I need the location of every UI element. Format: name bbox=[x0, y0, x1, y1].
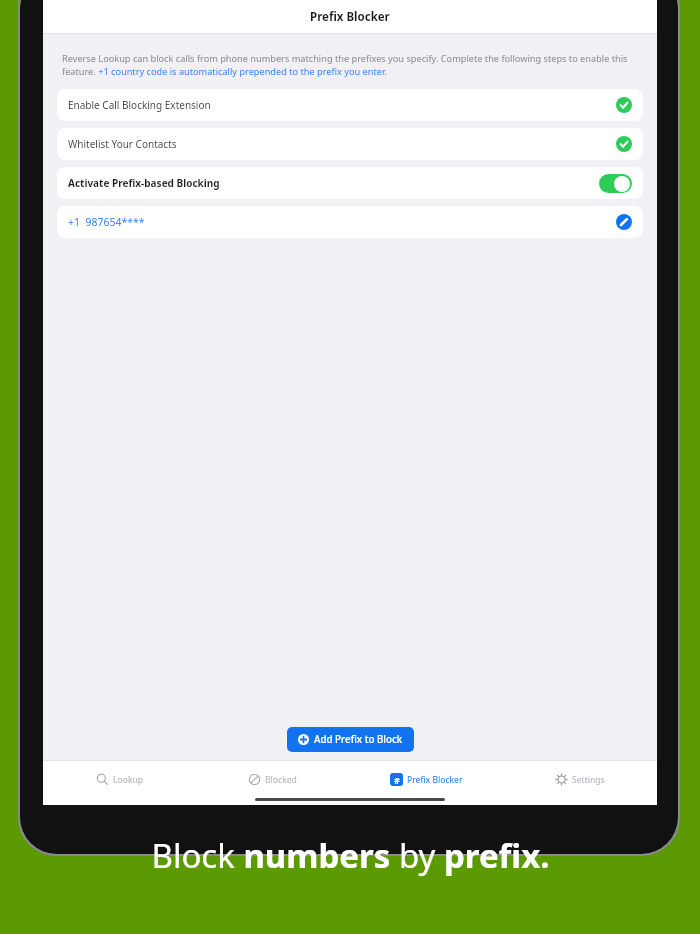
staticText: Whitelist Your Contacts bbox=[68, 137, 616, 151]
staticText: Prefix Blocker bbox=[310, 9, 390, 25]
staticText: # bbox=[394, 774, 400, 786]
staticText: Reverse Lookup can block calls from phon… bbox=[62, 52, 638, 78]
staticText: Enable Call Blocking Extension bbox=[68, 98, 616, 112]
staticText: Blocked bbox=[265, 774, 297, 786]
button[interactable]: +1 987654**** bbox=[57, 206, 643, 238]
staticText: Settings bbox=[572, 774, 605, 786]
button[interactable]: Add Prefix to Block bbox=[287, 727, 414, 752]
staticText: +1 987654**** bbox=[68, 215, 616, 229]
staticText: Add Prefix to Block bbox=[314, 733, 403, 746]
button[interactable]: Activate Prefix-based Blocking bbox=[57, 167, 643, 199]
button[interactable]: Activate Prefix-based Blocking toggle bbox=[599, 174, 632, 193]
button[interactable]: # bbox=[349, 761, 503, 798]
staticText: Lookup bbox=[113, 774, 144, 786]
staticText: Prefix Blocker bbox=[407, 774, 463, 786]
staticText: Block numbers by prefix. bbox=[151, 833, 550, 878]
button[interactable]: Whitelist Your Contacts bbox=[57, 128, 643, 160]
button[interactable]: Enable Call Blocking Extension bbox=[57, 89, 643, 121]
staticText: Activate Prefix-based Blocking bbox=[68, 176, 599, 190]
button[interactable]: Blocked bbox=[196, 761, 349, 798]
button[interactable]: Lookup bbox=[43, 761, 196, 798]
other: Edit prefix bbox=[616, 214, 632, 230]
button[interactable]: Settings bbox=[503, 761, 657, 798]
